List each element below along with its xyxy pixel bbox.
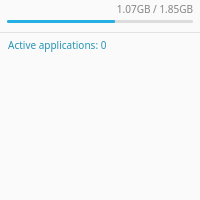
staticText: Active applications: 0	[8, 38, 107, 52]
staticText: 1.07GB / 1.85GB	[116, 2, 193, 16]
button[interactable]: Active applications: 0	[0, 33, 200, 58]
